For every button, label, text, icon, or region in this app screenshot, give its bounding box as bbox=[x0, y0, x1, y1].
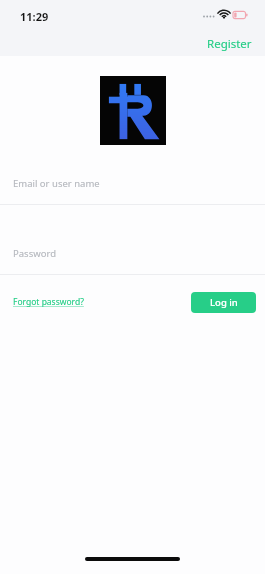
button[interactable]: Password bbox=[0, 242, 265, 275]
staticText: Email or user name bbox=[13, 177, 100, 190]
staticText: Register bbox=[207, 36, 252, 52]
button[interactable]: Forgot password? bbox=[13, 293, 84, 311]
button[interactable]: Log in bbox=[191, 292, 256, 313]
staticText: Forgot password? bbox=[13, 296, 84, 308]
staticText: Password bbox=[13, 247, 56, 260]
staticText: Log in bbox=[210, 296, 238, 309]
staticText: 11:29 bbox=[20, 9, 49, 24]
button[interactable]: Register bbox=[194, 32, 265, 56]
button[interactable]: Email or user name bbox=[0, 172, 265, 205]
